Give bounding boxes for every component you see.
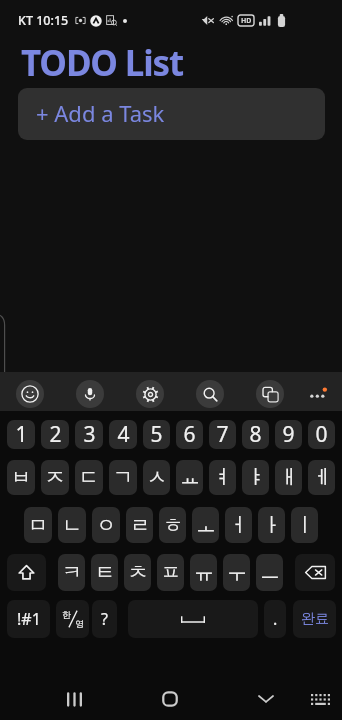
button[interactable]: Shift <box>7 554 46 591</box>
button[interactable]: ㅌ <box>91 554 118 591</box>
staticText: . <box>273 608 278 630</box>
staticText: ㅁ <box>28 513 48 538</box>
staticText: 5 <box>150 420 163 449</box>
button[interactable]: Hide keyboard <box>248 681 284 717</box>
button[interactable]: ㅊ <box>124 554 151 591</box>
staticText: !#1 <box>17 608 41 630</box>
button[interactable]: Home <box>152 681 188 717</box>
button[interactable]: ㅁ <box>24 507 52 543</box>
button[interactable]: Question mark <box>92 600 117 638</box>
staticText: 2 <box>49 420 62 449</box>
button[interactable]: ㄱ <box>109 460 137 495</box>
staticText: ㅠ <box>194 560 214 585</box>
staticText: KT 10:15 <box>18 12 69 29</box>
button[interactable]: Recents <box>56 681 92 717</box>
button[interactable]: ㅠ <box>190 554 217 591</box>
button[interactable]: 5 <box>143 420 170 449</box>
button[interactable]: 8 <box>242 420 269 449</box>
staticText: ㅇ <box>96 513 116 538</box>
button[interactable]: Space <box>128 600 258 638</box>
staticText: ㅂ <box>11 465 31 490</box>
button[interactable]: ㅔ <box>308 460 335 495</box>
staticText: ㅌ <box>95 560 115 585</box>
staticText: ㅍ <box>161 560 181 585</box>
button[interactable]: 1 <box>7 420 35 449</box>
staticText: ㅡ <box>260 560 280 585</box>
staticText: ㄱ <box>113 465 133 490</box>
staticText: HD <box>241 16 252 26</box>
staticText: 1 <box>15 420 28 449</box>
staticText: ㅛ <box>180 465 200 490</box>
button[interactable]: ㅕ <box>209 460 236 495</box>
staticText: ㅔ <box>312 465 332 490</box>
staticText: 6 <box>183 420 196 449</box>
button[interactable]: ㅅ <box>143 460 170 495</box>
staticText: 3 <box>83 420 96 449</box>
button[interactable]: ㅓ <box>225 507 252 543</box>
button[interactable]: ㅂ <box>7 460 35 495</box>
button[interactable]: 7 <box>209 420 236 449</box>
staticText: ㅏ <box>262 513 282 538</box>
button[interactable]: Period <box>264 600 286 638</box>
button[interactable]: ㅡ <box>256 554 283 591</box>
button[interactable]: Settings <box>136 380 164 408</box>
staticText: ㄴ <box>62 513 82 538</box>
button[interactable]: Backspace <box>295 554 335 591</box>
button[interactable]: ㅍ <box>157 554 184 591</box>
staticText: + Add a Task <box>36 98 165 128</box>
button[interactable]: ㅋ <box>58 554 85 591</box>
staticText: ㅐ <box>279 465 299 490</box>
button[interactable]: ㅛ <box>176 460 203 495</box>
staticText: ㅈ <box>45 465 65 490</box>
button[interactable]: ㅜ <box>223 554 250 591</box>
staticText: ㄹ <box>130 513 150 538</box>
staticText: 8 <box>249 420 262 449</box>
button[interactable]: ㅈ <box>41 460 69 495</box>
staticText: ㅓ <box>229 513 249 538</box>
button[interactable]: ㅏ <box>258 507 285 543</box>
button[interactable]: ㅐ <box>275 460 302 495</box>
button[interactable]: ㄹ <box>126 507 153 543</box>
button[interactable]: Translate <box>256 380 284 408</box>
button[interactable]: 3 <box>75 420 103 449</box>
button[interactable]: 9 <box>275 420 302 449</box>
staticText: TODO List <box>21 39 184 87</box>
staticText: ㅣ <box>295 513 315 538</box>
button[interactable]: Voice input <box>76 380 104 408</box>
button[interactable]: Change keyboard <box>302 681 338 717</box>
button[interactable]: Done <box>293 600 336 638</box>
button[interactable]: 6 <box>176 420 203 449</box>
staticText: ㅜ <box>227 560 247 585</box>
button[interactable]: Korean English toggle <box>56 600 89 638</box>
staticText: ㅎ <box>163 513 183 538</box>
staticText: 4 <box>117 420 130 449</box>
button[interactable]: ㅑ <box>242 460 269 495</box>
button[interactable]: ㄷ <box>75 460 103 495</box>
staticText: ㅊ <box>128 560 148 585</box>
staticText: ㅗ <box>196 513 216 538</box>
button[interactable]: + Add a Task <box>18 88 325 140</box>
staticText: 7 <box>216 420 229 449</box>
staticText: ㅕ <box>213 465 233 490</box>
button[interactable]: ㅇ <box>92 507 120 543</box>
button[interactable]: 0 <box>308 420 335 449</box>
button[interactable]: ㅣ <box>291 507 318 543</box>
staticText: ㅅ <box>147 465 167 490</box>
staticText: 9 <box>282 420 295 449</box>
button[interactable]: ㄴ <box>58 507 86 543</box>
staticText: ㄷ <box>79 465 99 490</box>
staticText: 완료 <box>301 610 329 628</box>
button[interactable]: Symbols <box>7 600 50 638</box>
button[interactable]: ㅎ <box>159 507 186 543</box>
button[interactable]: Emoji <box>16 380 44 408</box>
staticText: ㅑ <box>246 465 266 490</box>
button[interactable]: 4 <box>109 420 137 449</box>
staticText: ㅋ <box>62 560 82 585</box>
staticText: 영 <box>75 618 84 629</box>
staticText: 한 <box>62 609 71 620</box>
staticText: 0 <box>315 420 328 449</box>
button[interactable]: More options <box>306 381 330 407</box>
button[interactable]: 2 <box>41 420 69 449</box>
button[interactable]: Search <box>196 380 224 408</box>
button[interactable]: ㅗ <box>192 507 219 543</box>
